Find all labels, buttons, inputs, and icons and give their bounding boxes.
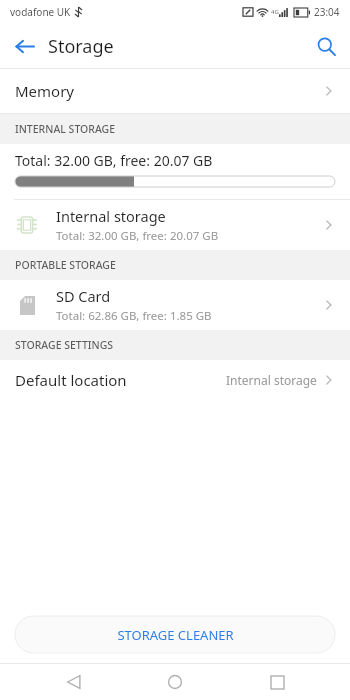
staticText: vodafone UK [10,5,71,19]
button[interactable]: Default location [0,360,350,400]
button[interactable]: Memory [0,69,350,113]
staticText: STORAGE CLEANER [117,626,234,644]
staticText: STORAGE SETTINGS [15,338,114,352]
button[interactable]: Recents [249,664,305,700]
staticText: Internal storage [56,206,166,226]
staticText: Total: 62.86 GB, free: 1.85 GB [56,308,212,324]
staticText: 4G [271,8,279,16]
staticText: Default location [15,370,127,390]
staticText: Internal storage [226,372,317,388]
staticText: INTERNAL STORAGE [15,122,116,136]
staticText: Storage [48,34,114,59]
staticText: 23:04 [314,5,340,19]
button[interactable]: Back [46,664,102,700]
staticText: Total: 32.00 GB, free: 20.07 GB [56,228,219,244]
button[interactable]: Home [147,664,203,700]
button[interactable]: Internal storage [0,200,350,250]
button[interactable]: SD Card [0,280,350,330]
staticText: PORTABLE STORAGE [15,258,116,272]
button[interactable]: Search [302,24,350,68]
staticText: SD Card [56,286,111,306]
staticText: Total: 32.00 GB, free: 20.07 GB [15,151,213,170]
button[interactable]: STORAGE CLEANER [15,616,335,653]
button[interactable]: Back [0,24,48,68]
staticText: Memory [15,81,75,101]
